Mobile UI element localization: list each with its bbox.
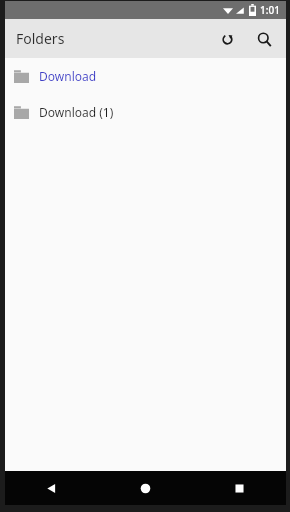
button[interactable]: Back bbox=[5, 471, 98, 505]
staticText: Download (1) bbox=[39, 104, 114, 120]
staticText: Download bbox=[39, 68, 97, 84]
button[interactable]: Recent apps bbox=[192, 471, 286, 505]
button[interactable]: Home bbox=[98, 471, 192, 505]
button[interactable]: Refresh bbox=[210, 22, 244, 56]
button[interactable]: Download (1) bbox=[5, 94, 286, 130]
button[interactable]: Download bbox=[5, 58, 286, 94]
staticText: 1:01 bbox=[260, 3, 280, 17]
button[interactable]: Search bbox=[247, 22, 281, 56]
staticText: Folders bbox=[16, 29, 65, 48]
